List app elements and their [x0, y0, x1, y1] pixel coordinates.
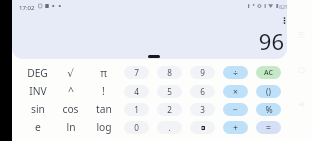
staticText: 5 — [167, 86, 172, 97]
button[interactable]: 1 — [124, 103, 149, 116]
staticText: tan — [96, 102, 112, 116]
staticText: INV — [29, 84, 47, 98]
button[interactable]: AC — [256, 66, 281, 79]
button[interactable]: 0 — [124, 121, 149, 134]
button[interactable]: 2 — [157, 103, 182, 116]
button[interactable]: + — [223, 121, 248, 134]
button[interactable]: () — [256, 85, 281, 98]
staticText: 82% — [279, 3, 287, 10]
button[interactable]: ! — [87, 82, 120, 100]
staticText: ln — [66, 120, 76, 134]
staticText: sin — [31, 102, 45, 116]
staticText: cos — [62, 102, 79, 116]
staticText: + — [233, 122, 238, 134]
staticText: × — [233, 86, 238, 98]
staticText: π — [100, 66, 107, 80]
button[interactable]: = — [256, 121, 281, 134]
staticText: log — [96, 120, 112, 134]
staticText: ! — [102, 84, 105, 98]
staticText: 0 — [134, 122, 139, 133]
button[interactable]: 9 — [190, 66, 215, 79]
staticText: AC — [264, 68, 273, 78]
staticText: 6 — [200, 86, 205, 97]
staticText: . — [168, 122, 171, 133]
button[interactable]: ^ — [54, 82, 87, 100]
staticText: 7 — [134, 67, 139, 78]
button[interactable]: 6 — [190, 85, 215, 98]
button[interactable]: log — [87, 118, 120, 136]
button[interactable]: e — [21, 118, 54, 136]
staticText: % — [265, 104, 273, 116]
button[interactable]: DEG — [21, 64, 54, 82]
staticText: 2 — [167, 104, 172, 115]
button[interactable]: cos — [54, 100, 87, 118]
staticText: e — [35, 120, 41, 134]
button[interactable]: × — [223, 85, 248, 98]
button[interactable]: 4 — [124, 85, 149, 98]
button[interactable]: − — [223, 103, 248, 116]
button[interactable]: ln — [54, 118, 87, 136]
staticText: ÷ — [233, 67, 238, 79]
button[interactable]: 7 — [124, 66, 149, 79]
staticText: − — [233, 104, 238, 116]
staticText: () — [266, 86, 271, 97]
button[interactable]: 8 — [157, 66, 182, 79]
staticText: 1 — [134, 104, 139, 115]
button[interactable]: . — [157, 121, 182, 134]
staticText: 9 — [200, 67, 205, 78]
button[interactable]: √ — [54, 64, 87, 82]
staticText: 4 — [134, 86, 139, 97]
button[interactable]: tan — [87, 100, 120, 118]
button[interactable]: More options — [279, 14, 290, 25]
button[interactable]: 3 — [190, 103, 215, 116]
button[interactable]: 5 — [157, 85, 182, 98]
button[interactable]: INV — [21, 82, 54, 100]
button[interactable]: sin — [21, 100, 54, 118]
staticText: √ — [67, 67, 74, 79]
staticText: DEG — [27, 66, 48, 80]
button[interactable]: ÷ — [223, 66, 248, 79]
staticText: 96 — [258, 26, 284, 56]
staticText: 8 — [167, 67, 172, 78]
staticText: 3 — [200, 104, 205, 115]
button[interactable]: Delete — [190, 121, 215, 134]
staticText: 17:02 — [19, 3, 35, 11]
button[interactable]: π — [87, 64, 120, 82]
staticText: ^ — [68, 84, 74, 98]
button[interactable]: % — [256, 103, 281, 116]
staticText: = — [266, 122, 271, 134]
button[interactable]: Back — [295, 99, 307, 111]
